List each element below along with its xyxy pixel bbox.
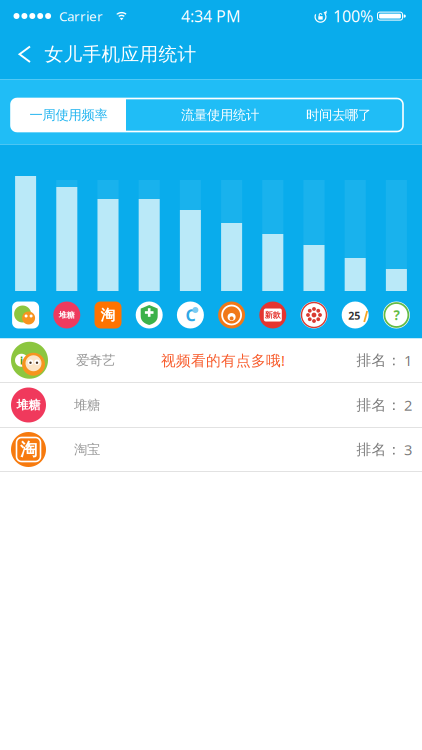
staticText: 淘 [100, 306, 115, 324]
staticText: 时间去哪了 [306, 107, 371, 123]
staticText: 爱奇艺 [76, 352, 115, 368]
staticText: Carrier [59, 7, 103, 25]
button[interactable]: 一周使用频率 [11, 98, 126, 131]
staticText: 堆糖 [59, 310, 75, 320]
staticText: 1 [404, 350, 412, 370]
staticText: 排名： [356, 351, 401, 369]
button[interactable]: 时间去哪了 [278, 98, 398, 131]
staticText: 排名： [356, 440, 401, 458]
staticText: i [20, 353, 23, 367]
staticText: 淘宝 [74, 441, 100, 458]
staticText: 排名： [356, 396, 401, 414]
staticText: 堆糖 [74, 397, 100, 413]
staticText: 一周使用频率 [29, 107, 107, 123]
button[interactable]: i [0, 338, 422, 382]
staticText: ? [393, 306, 399, 324]
staticText: 女儿手机应用统计 [44, 43, 196, 66]
staticText: 视频看的有点多哦! [161, 350, 285, 370]
staticText: 流量使用统计 [181, 107, 259, 123]
staticText: 淘 [20, 439, 37, 460]
staticText: 100% [333, 5, 373, 27]
button[interactable]: 淘 [0, 428, 422, 471]
staticText: 2 [404, 395, 412, 415]
staticText: 3 [404, 440, 412, 459]
staticText: C [185, 304, 195, 326]
staticText: 4:34 PM [181, 5, 241, 27]
button[interactable]: 堆糖 [0, 383, 422, 427]
button[interactable]: 流量使用统计 [150, 98, 290, 131]
staticText: 新款 [265, 310, 281, 320]
button[interactable]: Back [0, 45, 37, 63]
staticText: 25 [348, 308, 360, 323]
staticText: 堆糖 [16, 398, 40, 412]
